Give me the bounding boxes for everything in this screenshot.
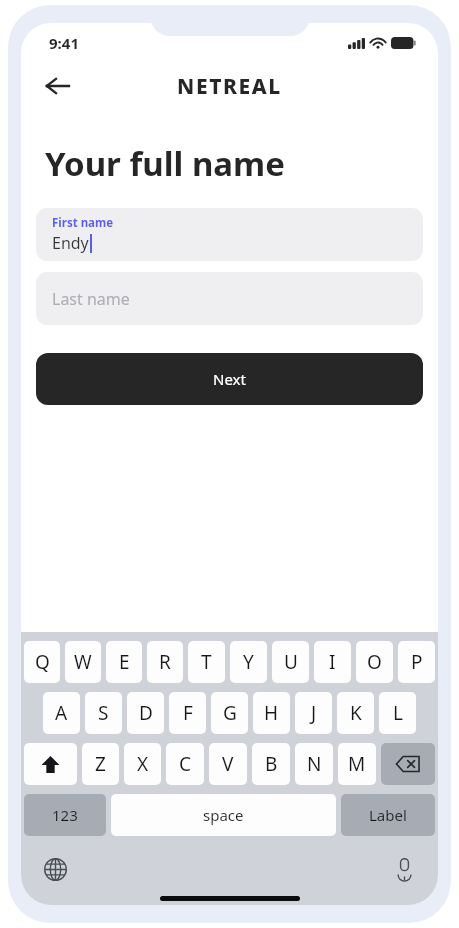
button[interactable]: Label	[341, 794, 435, 836]
staticText: F	[183, 700, 193, 726]
staticText: M	[348, 751, 366, 777]
staticText: R	[159, 649, 171, 675]
staticText: Z	[95, 751, 106, 777]
button[interactable]: S	[85, 692, 122, 734]
button[interactable]: U	[272, 641, 309, 683]
button[interactable]: P	[398, 641, 435, 683]
button[interactable]: Shift	[24, 743, 77, 785]
button[interactable]: C	[166, 743, 204, 785]
button[interactable]: Next	[36, 353, 423, 405]
button[interactable]: M	[338, 743, 376, 785]
button[interactable]: J	[295, 692, 332, 734]
button[interactable]: space	[111, 794, 336, 836]
button[interactable]: A	[43, 692, 80, 734]
button[interactable]: H	[253, 692, 290, 734]
button[interactable]: W	[65, 641, 101, 683]
staticText: O	[367, 649, 382, 675]
button[interactable]: T	[188, 641, 225, 683]
staticText: V	[222, 751, 234, 777]
button[interactable]: R	[147, 641, 183, 683]
staticText: NETREAL	[177, 72, 282, 101]
staticText: S	[98, 700, 109, 726]
staticText: U	[284, 649, 298, 675]
staticText: 123	[52, 805, 78, 825]
button[interactable]: Q	[24, 641, 60, 683]
staticText: Y	[243, 649, 254, 675]
button[interactable]: B	[252, 743, 290, 785]
button[interactable]: G	[211, 692, 248, 734]
button[interactable]: V	[209, 743, 247, 785]
button[interactable]: L	[379, 692, 416, 734]
button[interactable]: Last name	[36, 272, 423, 325]
staticText: I	[329, 649, 336, 675]
staticText: E	[119, 649, 130, 675]
staticText: L	[393, 700, 403, 726]
button[interactable]: K	[337, 692, 374, 734]
button[interactable]: N	[295, 743, 333, 785]
button[interactable]: Backspace	[381, 743, 435, 785]
button[interactable]: F	[169, 692, 206, 734]
staticText: C	[179, 751, 192, 777]
button[interactable]: X	[124, 743, 161, 785]
staticText: Label	[369, 805, 407, 825]
staticText: P	[411, 649, 423, 675]
staticText: Last name	[52, 288, 130, 310]
staticText: D	[139, 700, 153, 726]
staticText: Endy	[52, 232, 89, 254]
button[interactable]: E	[106, 641, 142, 683]
button[interactable]: Z	[82, 743, 119, 785]
staticText: T	[201, 649, 212, 675]
button[interactable]: 123	[24, 794, 106, 836]
button[interactable]: O	[356, 641, 393, 683]
staticText: B	[265, 751, 278, 777]
staticText: First name	[52, 215, 114, 231]
staticText: Next	[213, 369, 246, 389]
button[interactable]: Back	[35, 64, 79, 108]
staticText: space	[203, 805, 244, 825]
button[interactable]: First name	[36, 208, 423, 261]
button[interactable]: Change keyboard language	[35, 849, 75, 889]
button[interactable]: D	[127, 692, 164, 734]
staticText: K	[350, 700, 362, 726]
button[interactable]: Voice input	[384, 849, 424, 889]
button[interactable]: Y	[230, 641, 267, 683]
staticText: Your full name	[45, 141, 285, 186]
staticText: H	[264, 700, 279, 726]
staticText: 9:41	[49, 33, 79, 53]
staticText: A	[55, 700, 68, 726]
staticText: G	[223, 700, 237, 726]
staticText: W	[74, 649, 92, 675]
button[interactable]: I	[314, 641, 351, 683]
staticText: N	[307, 751, 322, 777]
staticText: Q	[35, 649, 50, 675]
staticText: X	[137, 751, 149, 777]
staticText: J	[311, 700, 317, 726]
